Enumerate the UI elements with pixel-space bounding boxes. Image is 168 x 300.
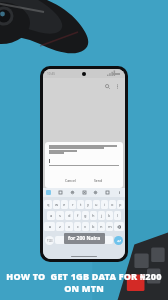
button[interactable]: n xyxy=(98,222,105,231)
button[interactable]: s xyxy=(56,211,64,220)
staticText: HOW TO GET 1GB DATA FOR ₦200 ON MTN xyxy=(0,270,168,294)
staticText: g xyxy=(84,213,87,218)
staticText: l xyxy=(117,213,119,218)
staticText: k xyxy=(108,213,111,218)
button[interactable]: GIF xyxy=(82,190,87,195)
button[interactable]: More options xyxy=(113,82,121,90)
button[interactable]: i xyxy=(101,200,108,209)
button[interactable]: j xyxy=(98,211,105,220)
button[interactable]: y xyxy=(85,200,92,209)
staticText: m xyxy=(108,224,112,229)
staticText: z xyxy=(59,224,61,229)
button[interactable]: Search xyxy=(103,82,111,90)
staticText: j xyxy=(101,213,103,218)
button[interactable]: d xyxy=(65,211,73,220)
button[interactable]: Enter xyxy=(114,236,123,245)
staticText: p xyxy=(119,202,122,207)
button[interactable]: Backspace xyxy=(114,222,124,231)
staticText: Cancel xyxy=(65,178,76,183)
staticText: h xyxy=(92,213,95,218)
staticText: u xyxy=(95,202,98,207)
button[interactable]: t xyxy=(77,200,84,209)
button[interactable]: m xyxy=(106,222,113,231)
button[interactable]: b xyxy=(90,222,97,231)
staticText: Send xyxy=(94,178,103,183)
staticText: q xyxy=(47,202,50,207)
button[interactable]: z xyxy=(56,222,64,231)
button[interactable]: q xyxy=(44,200,52,209)
button[interactable]: f xyxy=(74,211,81,220)
staticText: x xyxy=(68,224,71,229)
staticText: a xyxy=(50,213,53,218)
staticText: ?123 xyxy=(47,239,53,243)
button[interactable]: p xyxy=(117,200,124,209)
staticText: e xyxy=(63,202,66,207)
button[interactable]: g xyxy=(82,211,89,220)
button[interactable]: Themes xyxy=(58,190,63,195)
staticText: t xyxy=(80,202,82,207)
staticText: for 200 Naira xyxy=(68,235,101,242)
staticText: 10:45 xyxy=(47,72,56,76)
staticText: w xyxy=(55,202,59,207)
button[interactable]: v xyxy=(82,222,89,231)
button[interactable]: k xyxy=(106,211,113,220)
button[interactable]: h xyxy=(90,211,97,220)
button[interactable]: Shift xyxy=(44,222,55,231)
button[interactable]: e xyxy=(61,200,68,209)
button[interactable]: a xyxy=(47,211,55,220)
button[interactable]: o xyxy=(109,200,116,209)
staticText: b xyxy=(92,224,95,229)
staticText: c xyxy=(77,224,79,229)
button[interactable]: c xyxy=(74,222,81,231)
button[interactable]: Clipboard xyxy=(105,190,110,195)
staticText: o xyxy=(111,202,114,207)
button[interactable]: u xyxy=(93,200,100,209)
staticText: s xyxy=(59,213,61,218)
staticText: y xyxy=(87,202,90,207)
button[interactable]: Send xyxy=(91,177,106,184)
staticText: d xyxy=(68,213,71,218)
staticText: f xyxy=(77,213,79,218)
button[interactable]: w xyxy=(53,200,60,209)
staticText: v xyxy=(84,224,87,229)
staticText: i xyxy=(104,202,106,207)
staticText: n xyxy=(100,224,103,229)
button[interactable]: x xyxy=(65,222,73,231)
button[interactable]: Voice input xyxy=(117,190,122,195)
button[interactable]: Settings xyxy=(93,190,98,195)
button[interactable]: l xyxy=(114,211,121,220)
button[interactable]: r xyxy=(69,200,76,209)
button[interactable]: Stickers xyxy=(70,190,75,195)
button[interactable]: Cancel xyxy=(62,177,79,184)
button[interactable]: ?123 xyxy=(45,236,54,245)
button[interactable] xyxy=(55,236,113,244)
button[interactable]: Gboard xyxy=(46,190,51,195)
staticText: r xyxy=(72,202,74,207)
